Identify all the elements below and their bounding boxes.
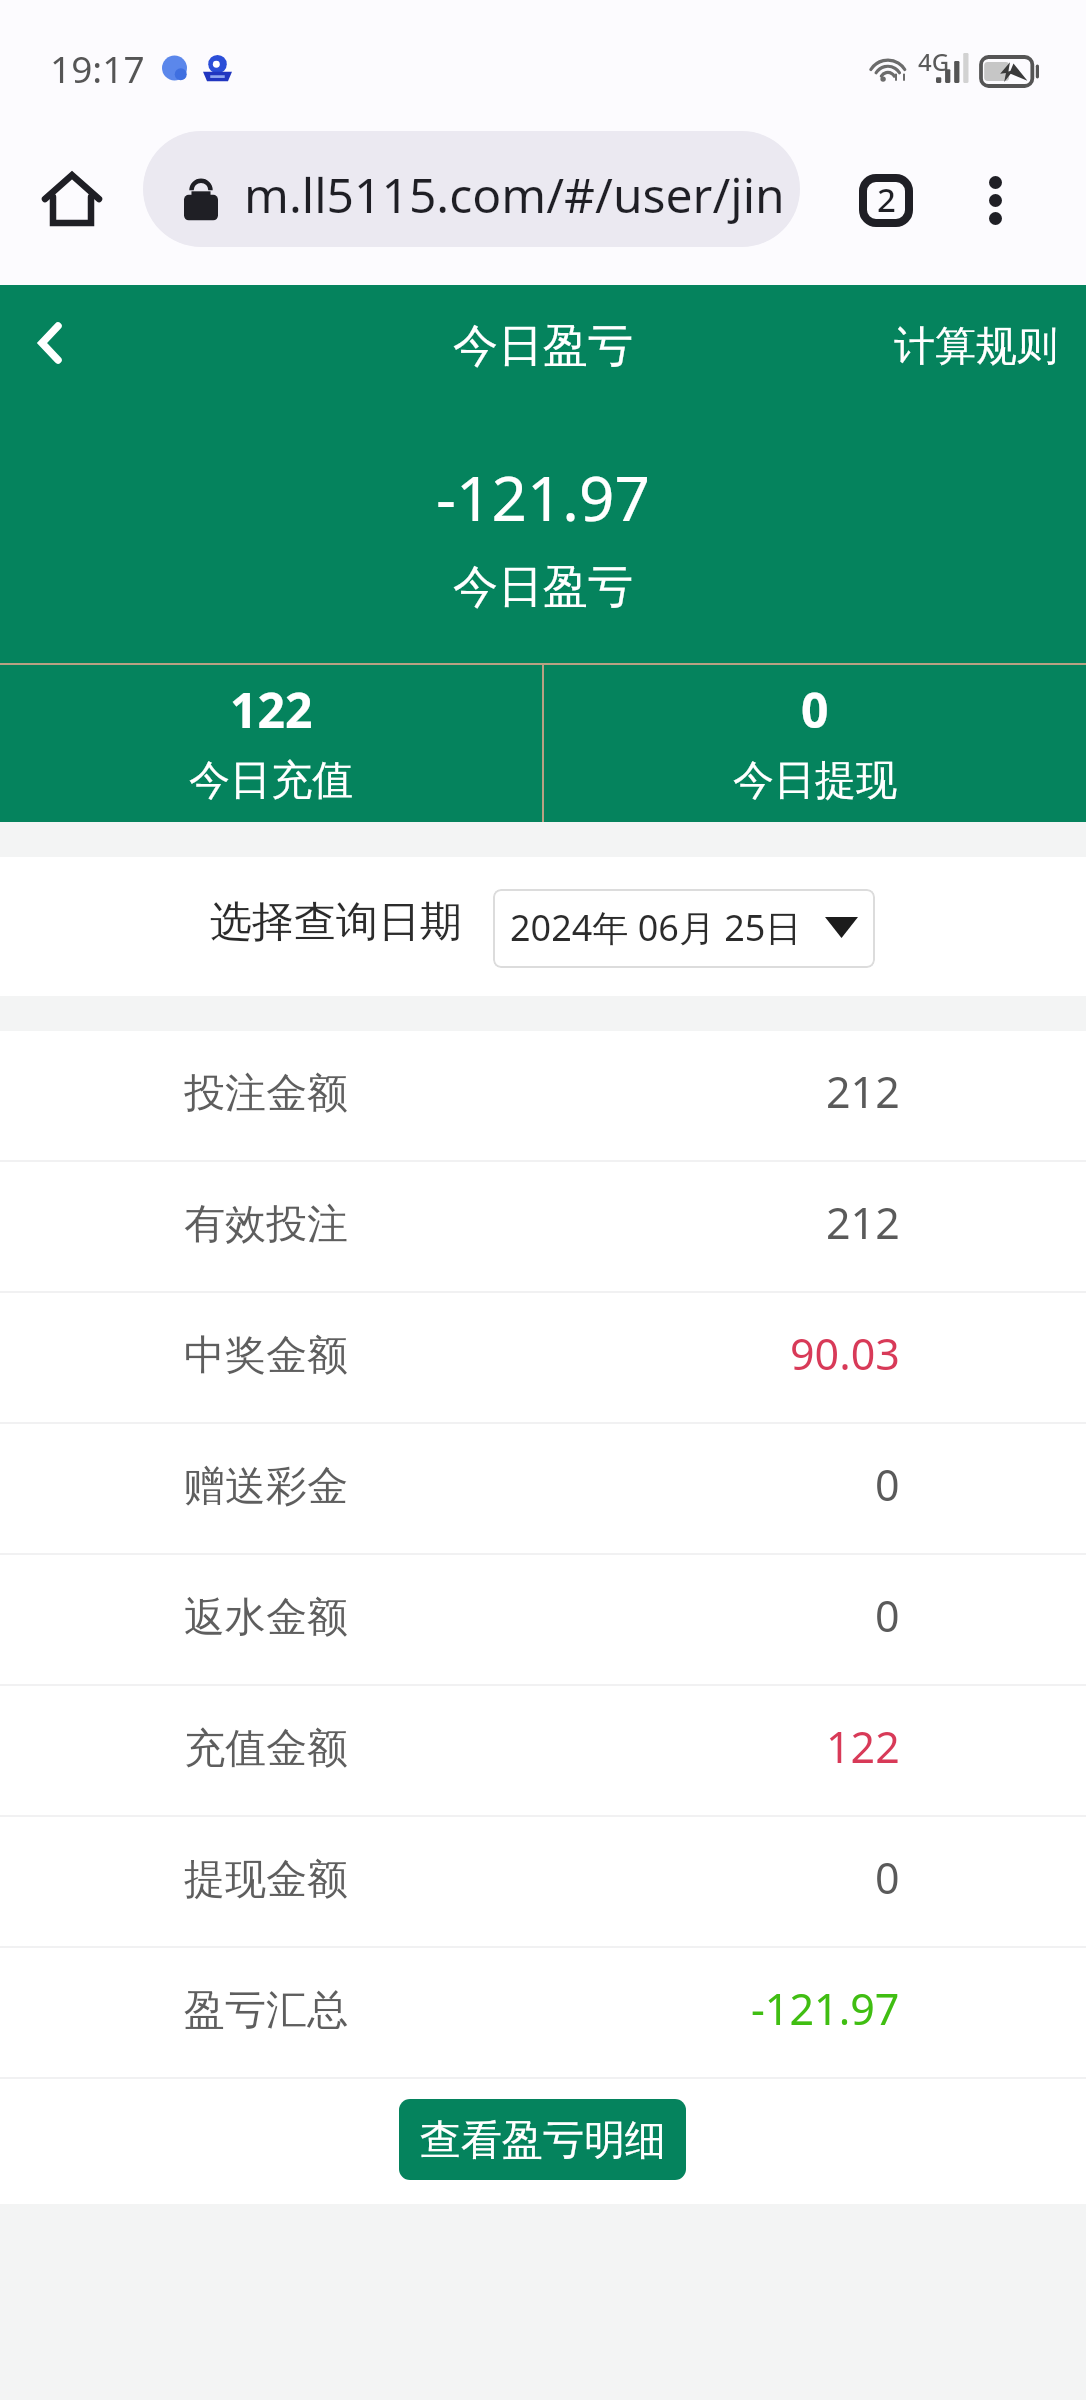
button[interactable]: More options — [952, 120, 1038, 285]
staticText: 今日盈亏 — [453, 559, 633, 616]
staticText: -121.97 — [436, 455, 650, 539]
button[interactable]: 返水金额 — [0, 1555, 1086, 1686]
staticText: 赠送彩金 — [184, 1461, 348, 1513]
button[interactable]: m.ll5115.com/#/user/jin — [143, 131, 800, 247]
button[interactable]: 提现金额 — [0, 1817, 1086, 1948]
staticText: 提现金额 — [184, 1854, 348, 1906]
button[interactable]: 查看盈亏明细 — [399, 2099, 686, 2180]
button[interactable]: 充值金额 — [0, 1686, 1086, 1817]
staticText: 充值金额 — [184, 1723, 348, 1775]
staticText: 122 — [826, 1717, 900, 1776]
staticText: 今日提现 — [733, 755, 897, 807]
staticText: 有效投注 — [184, 1199, 348, 1251]
button[interactable]: 中奖金额 — [0, 1293, 1086, 1424]
button[interactable]: 盈亏汇总 — [0, 1948, 1086, 2079]
staticText: -121.97 — [751, 1979, 900, 2038]
button[interactable]: Back — [0, 285, 100, 395]
button[interactable]: 2024年 06月 25日 — [493, 889, 875, 968]
button[interactable]: Tabs, 2 open — [832, 120, 940, 285]
staticText: 今日盈亏 — [453, 318, 633, 375]
staticText: 查看盈亏明细 — [420, 2115, 666, 2167]
staticText: 返水金额 — [184, 1592, 348, 1644]
button[interactable]: 投注金额 — [0, 1031, 1086, 1162]
staticText: 盈亏汇总 — [184, 1985, 348, 2037]
button[interactable]: 有效投注 — [0, 1162, 1086, 1293]
staticText: 0 — [875, 1848, 900, 1907]
button[interactable]: 0 — [544, 665, 1086, 822]
staticText: 212 — [826, 1062, 900, 1121]
staticText: 0 — [801, 677, 829, 742]
staticText: m.ll5115.com/#/user/jin — [244, 162, 785, 227]
staticText: 0 — [875, 1455, 900, 1514]
staticText: 90.03 — [790, 1324, 900, 1383]
staticText: 4G — [918, 45, 950, 78]
staticText: 2 — [877, 177, 896, 222]
staticText: 2024年 06月 25日 — [510, 903, 802, 952]
staticText: 计算规则 — [894, 321, 1058, 373]
button[interactable]: 计算规则 — [876, 285, 1086, 395]
staticText: 投注金额 — [184, 1068, 348, 1120]
staticText: 中奖金额 — [184, 1330, 348, 1382]
button[interactable]: 122 — [0, 665, 542, 822]
staticText: 选择查询日期 — [210, 896, 462, 949]
button[interactable]: Home — [0, 120, 143, 285]
staticText: 212 — [826, 1193, 900, 1252]
staticText: 今日充值 — [189, 755, 353, 807]
staticText: 0 — [875, 1586, 900, 1645]
button[interactable]: 赠送彩金 — [0, 1424, 1086, 1555]
staticText: 19:17 — [50, 43, 145, 93]
staticText: 122 — [230, 677, 313, 742]
